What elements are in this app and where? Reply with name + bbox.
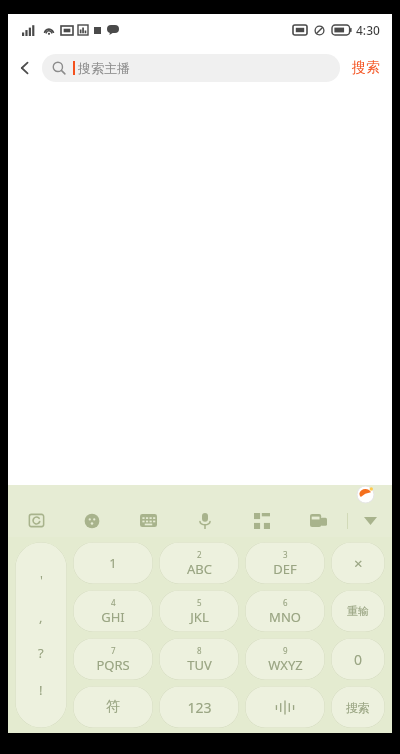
button[interactable]: 1 <box>73 542 153 584</box>
button[interactable]: Keyboard layout <box>120 504 176 537</box>
staticText: 搜索 <box>346 700 370 715</box>
button[interactable]: Backspace <box>331 542 385 584</box>
button[interactable]: 3 <box>245 542 325 584</box>
button[interactable]: Sogou input <box>8 504 64 537</box>
staticText: 符 <box>106 698 120 716</box>
staticText: MNO <box>269 608 301 626</box>
staticText: 1 <box>109 554 117 572</box>
button[interactable]: 2 <box>159 542 239 584</box>
staticText: 0 <box>354 650 363 669</box>
staticText: ABC <box>187 560 212 578</box>
staticText: DEF <box>273 560 297 578</box>
staticText: ! <box>39 681 43 699</box>
button[interactable]: 搜索主播 <box>42 54 340 82</box>
staticText: 搜索主播 <box>78 60 130 76</box>
staticText: ? <box>38 644 44 662</box>
staticText: 6 <box>283 597 288 608</box>
button[interactable]: 0 <box>331 638 385 680</box>
staticText: TUV <box>187 656 212 674</box>
button[interactable]: ' <box>15 542 67 728</box>
staticText: 重输 <box>347 604 369 618</box>
button[interactable]: 9 <box>245 638 325 680</box>
button[interactable]: Voice input <box>245 686 325 728</box>
button[interactable]: Back <box>8 46 42 90</box>
button[interactable]: 8 <box>159 638 239 680</box>
button[interactable]: 7 <box>73 638 153 680</box>
staticText: PQRS <box>96 656 130 674</box>
button[interactable]: 6 <box>245 590 325 632</box>
staticText: 9 <box>283 645 288 656</box>
staticText: GHI <box>101 608 125 626</box>
button[interactable]: 搜索 <box>340 46 392 90</box>
button[interactable]: 5 <box>159 590 239 632</box>
staticText: 搜索 <box>352 59 380 77</box>
button[interactable]: Clipboard <box>290 504 347 537</box>
button[interactable]: Hide keyboard <box>348 504 392 537</box>
button[interactable]: 123 <box>159 686 239 728</box>
button[interactable]: 4 <box>73 590 153 632</box>
staticText: 5 <box>197 597 202 608</box>
button[interactable]: Voice input <box>176 504 233 537</box>
button[interactable]: 重输 <box>331 590 385 632</box>
staticText: 4 <box>111 597 116 608</box>
button[interactable]: Sogou badge <box>357 486 374 503</box>
staticText: ' <box>40 571 43 589</box>
staticText: , <box>39 608 43 626</box>
staticText: 3 <box>283 549 288 560</box>
button[interactable]: More panels <box>233 504 290 537</box>
staticText: JKL <box>190 608 209 626</box>
staticText: 7 <box>111 645 116 656</box>
staticText: 8 <box>197 645 202 656</box>
staticText: × <box>354 553 363 573</box>
staticText: WXYZ <box>268 656 303 674</box>
staticText: 123 <box>187 698 212 717</box>
button[interactable]: Emoji <box>64 504 120 537</box>
staticText: 2 <box>197 549 202 560</box>
button[interactable]: 搜索 <box>331 686 385 728</box>
staticText: 4:30 <box>356 22 380 38</box>
button[interactable]: 符 <box>73 686 153 728</box>
